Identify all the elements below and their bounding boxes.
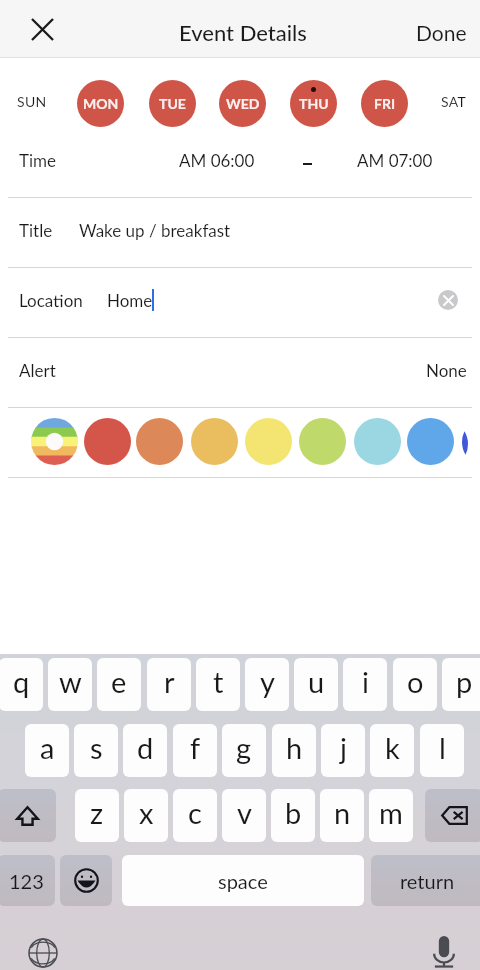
button[interactable] — [299, 418, 346, 465]
button[interactable]: f — [173, 724, 217, 777]
staticText: Home — [107, 290, 153, 310]
button[interactable]: Dictate — [424, 931, 464, 970]
button[interactable]: x — [124, 789, 168, 842]
staticText: AM 07:00 — [357, 150, 433, 170]
button[interactable]: Clear text — [438, 290, 458, 310]
staticText: Done — [416, 20, 467, 45]
staticText: y — [260, 664, 275, 699]
staticText: c — [188, 795, 202, 830]
staticText: o — [407, 664, 424, 699]
button[interactable]: p — [442, 658, 480, 711]
staticText: SUN — [17, 93, 47, 110]
staticText: s — [90, 730, 103, 765]
button[interactable]: a — [25, 724, 69, 777]
button[interactable] — [455, 418, 480, 465]
staticText: i — [362, 664, 369, 699]
button[interactable]: Location — [0, 267, 480, 337]
staticText: e — [111, 664, 127, 699]
button[interactable] — [84, 418, 131, 465]
button[interactable] — [136, 418, 183, 465]
button[interactable]: e — [97, 658, 141, 711]
button[interactable]: MON — [77, 80, 124, 127]
staticText: SAT — [441, 93, 467, 110]
button[interactable]: y — [245, 658, 289, 711]
button[interactable]: THU — [290, 80, 337, 127]
staticText: f — [190, 730, 201, 765]
staticText: d — [137, 730, 154, 765]
button[interactable]: s — [74, 724, 118, 777]
staticText: n — [334, 795, 351, 830]
staticText: u — [308, 664, 325, 699]
staticText: x — [139, 795, 154, 830]
button[interactable] — [31, 418, 78, 465]
staticText: return — [400, 869, 455, 893]
button[interactable]: j — [321, 724, 365, 777]
staticText: v — [237, 795, 252, 830]
button[interactable]: d — [123, 724, 167, 777]
button[interactable]: Emoji — [60, 855, 112, 906]
button[interactable]: q — [0, 658, 43, 711]
staticText: a — [40, 730, 55, 765]
button[interactable]: r — [147, 658, 191, 711]
button[interactable]: u — [294, 658, 338, 711]
staticText: j — [340, 730, 347, 765]
button[interactable]: 123 — [0, 855, 55, 906]
button[interactable]: l — [420, 724, 464, 777]
staticText: THU — [299, 95, 329, 112]
button[interactable]: n — [320, 789, 364, 842]
staticText: Time — [19, 150, 57, 170]
button[interactable]: m — [369, 789, 413, 842]
button[interactable]: i — [343, 658, 387, 711]
staticText: h — [286, 730, 303, 765]
staticText: FRI — [374, 95, 396, 112]
button[interactable]: b — [271, 789, 315, 842]
staticText: t — [213, 664, 224, 699]
button[interactable]: SUN — [17, 80, 47, 122]
button[interactable]: t — [196, 658, 240, 711]
staticText: k — [385, 730, 400, 765]
button[interactable]: z — [75, 789, 119, 842]
button[interactable]: w — [48, 658, 92, 711]
button[interactable]: Time — [0, 139, 480, 197]
staticText: WED — [226, 95, 260, 112]
button[interactable]: Shift — [0, 789, 56, 842]
staticText: z — [90, 795, 104, 830]
button[interactable]: Close — [0, 0, 84, 58]
staticText: q — [13, 664, 30, 699]
staticText: m — [379, 795, 403, 830]
button[interactable]: v — [222, 789, 266, 842]
button[interactable] — [245, 418, 292, 465]
button[interactable]: SAT — [441, 80, 471, 122]
staticText: l — [439, 730, 446, 765]
staticText: Wake up / breakfast — [79, 220, 231, 240]
button[interactable]: Change keyboard — [23, 933, 63, 970]
staticText: TUE — [159, 95, 186, 112]
staticText: b — [285, 795, 302, 830]
staticText: Event Details — [179, 19, 307, 45]
button[interactable]: g — [222, 724, 266, 777]
button[interactable]: WED — [219, 80, 266, 127]
button[interactable] — [407, 418, 454, 465]
staticText: 123 — [9, 869, 44, 893]
button[interactable]: Alert — [0, 337, 480, 407]
staticText: r — [164, 664, 175, 699]
button[interactable]: space — [122, 855, 364, 906]
staticText: MON — [83, 95, 119, 112]
button[interactable]: k — [370, 724, 414, 777]
button[interactable]: TUE — [149, 80, 196, 127]
button[interactable]: h — [272, 724, 316, 777]
button[interactable]: o — [393, 658, 437, 711]
button[interactable] — [354, 418, 401, 465]
staticText: AM 06:00 — [179, 150, 255, 170]
staticText: space — [218, 869, 268, 893]
button[interactable]: Backspace — [425, 789, 480, 842]
button[interactable]: Done — [416, 0, 467, 58]
button[interactable]: Title — [0, 197, 480, 267]
staticText: w — [59, 664, 82, 699]
button[interactable]: c — [173, 789, 217, 842]
button[interactable]: return — [371, 855, 480, 906]
button[interactable] — [191, 418, 238, 465]
staticText: Title — [19, 220, 53, 240]
staticText: p — [456, 664, 473, 699]
button[interactable]: FRI — [361, 80, 408, 127]
